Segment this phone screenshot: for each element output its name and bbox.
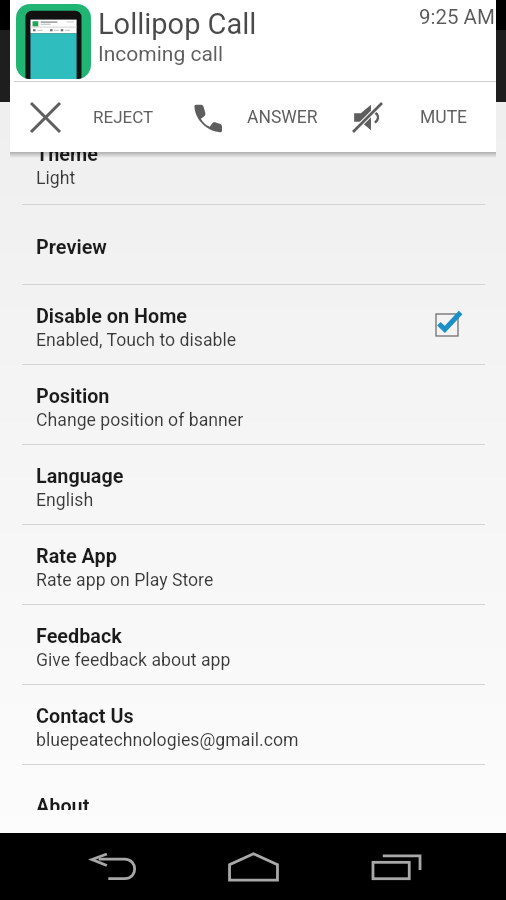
button[interactable]: REJECT <box>31 82 181 152</box>
staticText: REJECT <box>93 107 154 127</box>
staticText: Preview <box>36 236 107 259</box>
staticText: Light <box>36 168 76 189</box>
button[interactable]: Disable on Home <box>0 285 506 364</box>
staticText: About <box>36 795 90 810</box>
staticText: Contact Us <box>36 705 134 728</box>
button[interactable]: Disable on Home toggle <box>425 303 469 347</box>
staticText: Feedback <box>36 625 122 648</box>
button[interactable]: Back <box>81 833 149 900</box>
staticText: Change position of banner <box>36 410 244 431</box>
staticText: Incoming call <box>98 42 224 67</box>
button[interactable]: MUTE <box>353 82 503 152</box>
button[interactable]: Contact Us <box>0 685 506 764</box>
button[interactable]: Recent apps <box>361 833 431 900</box>
staticText: Enabled, Touch to disable <box>36 330 237 351</box>
staticText: 9:25 AM <box>419 5 495 29</box>
button[interactable]: ANSWER <box>193 82 343 152</box>
staticText: bluepeatechnologies@gmail.com <box>36 730 299 751</box>
button[interactable]: Position <box>0 365 506 444</box>
staticText: English <box>36 490 94 511</box>
staticText: Lollipop Call <box>98 7 257 41</box>
button[interactable]: Preview <box>0 205 506 284</box>
button[interactable]: Feedback <box>0 605 506 684</box>
button[interactable]: About <box>0 789 506 810</box>
staticText: Disable on Home <box>36 305 188 328</box>
staticText: Position <box>36 385 110 408</box>
staticText: Theme <box>36 143 98 166</box>
button[interactable]: Home <box>218 833 288 900</box>
staticText: Give feedback about app <box>36 650 231 671</box>
button[interactable]: Language <box>0 445 506 524</box>
staticText: Rate app on Play Store <box>36 570 214 591</box>
button[interactable]: Lollipop Call <box>10 0 496 81</box>
button[interactable]: Rate App <box>0 525 506 604</box>
staticText: Rate App <box>36 545 117 568</box>
staticText: Language <box>36 465 124 488</box>
button[interactable]: Theme <box>0 122 506 204</box>
staticText: ANSWER <box>247 107 318 128</box>
staticText: MUTE <box>420 107 468 128</box>
